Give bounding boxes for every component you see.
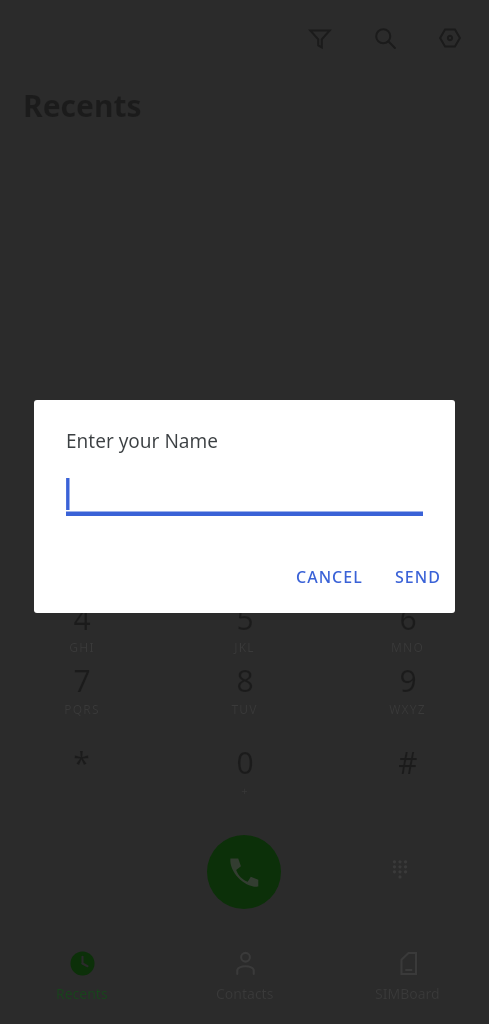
staticText: PQRS [64, 701, 100, 717]
staticText: * [73, 742, 90, 783]
staticText: Recents [23, 85, 142, 126]
staticText: 8 [236, 660, 254, 701]
button[interactable]: Filter [296, 14, 344, 62]
staticText: Recents [56, 984, 108, 1003]
staticText: # [398, 742, 418, 783]
staticText: TUV [231, 701, 258, 717]
button[interactable]: Recents [0, 944, 163, 1024]
staticText: SEND [395, 566, 441, 588]
staticText: WXYZ [389, 701, 426, 717]
button[interactable]: SEND [383, 558, 453, 596]
button[interactable]: 6 [326, 598, 489, 660]
button[interactable]: Settings [426, 14, 474, 62]
staticText: 5 [236, 598, 254, 639]
staticText: JKL [234, 639, 255, 655]
staticText: 4 [73, 598, 91, 639]
staticText: Enter your Name [66, 428, 218, 454]
staticText: SIMBoard [375, 984, 440, 1003]
button[interactable]: CANCEL [284, 558, 375, 596]
staticText: 0 [236, 742, 254, 783]
button[interactable]: Search [361, 14, 409, 62]
staticText: 9 [399, 660, 417, 701]
button[interactable]: Name input [66, 476, 423, 516]
staticText: Contacts [216, 984, 274, 1003]
button[interactable]: 5 [163, 598, 326, 660]
button[interactable]: 4 [0, 598, 163, 660]
staticText: MNO [391, 639, 424, 655]
staticText: GHI [69, 639, 95, 655]
staticText: 7 [73, 660, 91, 701]
staticText: 6 [399, 598, 417, 639]
staticText: CANCEL [296, 566, 363, 588]
button[interactable]: Call [207, 835, 281, 909]
